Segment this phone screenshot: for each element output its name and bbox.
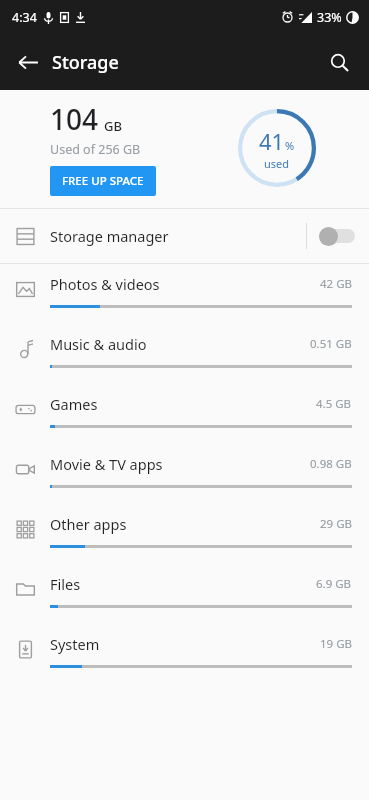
staticText: Movie & TV apps (50, 454, 163, 474)
staticText: Used of 256 GB (50, 141, 141, 158)
button[interactable]: Storage manager (0, 209, 369, 263)
staticText: used (264, 156, 290, 171)
staticText: 0.98 GB (310, 456, 352, 472)
staticText: Photos & videos (50, 274, 160, 294)
staticText: 41 (259, 126, 285, 156)
staticText: 104 (50, 100, 99, 138)
button[interactable]: Files (0, 564, 369, 624)
staticText: Other apps (50, 514, 127, 534)
staticText: Files (50, 574, 81, 594)
staticText: System (50, 634, 100, 654)
button[interactable]: Back (6, 40, 50, 84)
button[interactable]: Photos & videos (0, 264, 369, 324)
staticText: GB (104, 117, 122, 135)
staticText: FREE UP SPACE (62, 173, 144, 189)
staticText: Storage (52, 50, 119, 75)
staticText: 0.51 GB (310, 336, 352, 352)
button[interactable]: Search (317, 40, 361, 84)
staticText: 33% (317, 9, 342, 26)
staticText: 19 GB (320, 636, 352, 652)
button[interactable]: Other apps (0, 504, 369, 564)
button[interactable]: Storage manager toggle (307, 209, 369, 263)
staticText: Music & audio (50, 334, 147, 354)
staticText: 6.9 GB (316, 576, 352, 592)
button[interactable]: FREE UP SPACE (50, 166, 156, 196)
staticText: % (285, 138, 295, 153)
button[interactable]: Games (0, 384, 369, 444)
staticText: Games (50, 394, 98, 414)
button[interactable]: System (0, 624, 369, 684)
staticText: 29 GB (320, 516, 352, 532)
staticText: 42 GB (320, 276, 352, 292)
staticText: Storage manager (50, 226, 169, 246)
button[interactable]: Movie & TV apps (0, 444, 369, 504)
staticText: 4.5 GB (316, 396, 352, 412)
staticText: 4:34 (12, 9, 37, 26)
button[interactable]: Music & audio (0, 324, 369, 384)
